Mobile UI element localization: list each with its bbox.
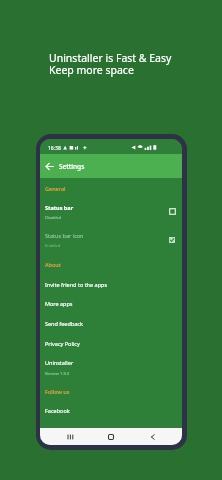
button[interactable] (40, 333, 182, 353)
button[interactable] (40, 401, 182, 421)
button[interactable]: Back (141, 428, 165, 445)
button[interactable] (40, 294, 182, 314)
button[interactable]: Back (40, 154, 59, 178)
staticText: Uninstaller (45, 359, 74, 366)
staticText: Version 1.9.3 (45, 371, 70, 376)
staticText: Enabled (45, 243, 61, 248)
staticText: Keep more space (49, 63, 134, 77)
staticText: Invite friend to the apps (45, 281, 108, 288)
button[interactable]: Recents (58, 428, 82, 445)
staticText: General (45, 185, 66, 192)
staticText: Uninstaller is Fast & Easy (49, 51, 172, 65)
staticText: Disabled (45, 215, 62, 220)
staticText: Facebook (45, 407, 70, 414)
button[interactable]: Home (99, 428, 123, 445)
staticText: Status bar icon (45, 232, 84, 239)
staticText: 16:38 (48, 145, 61, 152)
button[interactable] (40, 314, 182, 334)
button[interactable] (40, 226, 182, 255)
staticText: Send feedback (45, 320, 83, 327)
staticText: Privacy Policy (45, 340, 80, 347)
button[interactable] (40, 274, 182, 294)
staticText: Settings (59, 162, 85, 171)
staticText: Follow us (45, 388, 70, 395)
button[interactable] (40, 353, 182, 380)
staticText: More apps (45, 300, 73, 307)
staticText: Status bar (45, 204, 74, 211)
staticText: About (45, 261, 61, 268)
button[interactable] (40, 196, 182, 226)
